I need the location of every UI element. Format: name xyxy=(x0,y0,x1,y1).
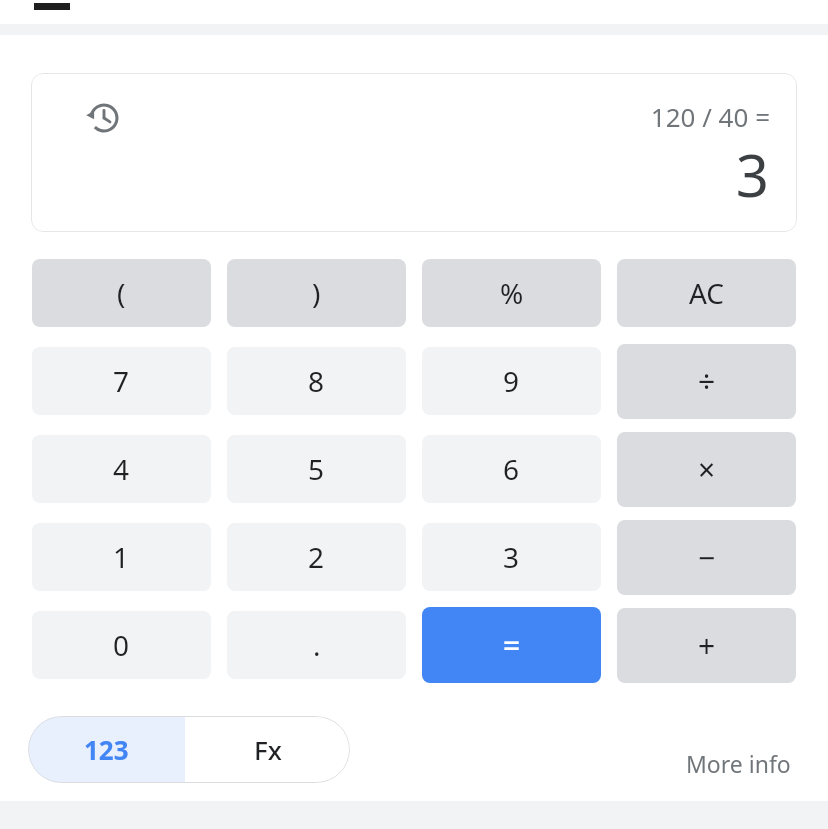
button[interactable]: % xyxy=(422,259,601,327)
button[interactable]: AC xyxy=(617,259,796,327)
staticText: 9 xyxy=(503,362,520,400)
staticText: 123 xyxy=(84,732,129,767)
staticText: Fx xyxy=(254,732,282,767)
button[interactable]: 4 xyxy=(32,435,211,503)
button[interactable]: 2 xyxy=(227,523,406,591)
staticText: 120 / 40 = xyxy=(650,99,770,134)
staticText: More info xyxy=(686,748,791,779)
staticText: ÷ xyxy=(698,361,716,402)
staticText: 7 xyxy=(113,362,130,400)
staticText: 3 xyxy=(503,538,520,576)
staticText: × xyxy=(698,449,716,490)
button[interactable]: ÷ xyxy=(617,344,796,419)
button[interactable]: 123 xyxy=(28,716,185,783)
staticText: 1 xyxy=(113,538,130,576)
button[interactable]: 1 xyxy=(32,523,211,591)
button[interactable]: 3 xyxy=(422,523,601,591)
button[interactable]: 8 xyxy=(227,347,406,415)
staticText: − xyxy=(698,537,716,578)
button[interactable]: More info xyxy=(686,748,791,779)
button[interactable]: × xyxy=(617,432,796,507)
button[interactable]: 5 xyxy=(227,435,406,503)
button[interactable]: + xyxy=(617,608,796,683)
staticText: 5 xyxy=(308,450,325,488)
staticText: . xyxy=(313,626,321,664)
staticText: + xyxy=(698,625,716,666)
staticText: = xyxy=(503,625,521,666)
staticText: ) xyxy=(312,274,321,312)
button[interactable]: 7 xyxy=(32,347,211,415)
staticText: AC xyxy=(689,274,725,312)
button[interactable]: = xyxy=(422,607,601,683)
button[interactable]: − xyxy=(617,520,796,595)
button[interactable]: ) xyxy=(227,259,406,327)
staticText: 8 xyxy=(308,362,325,400)
staticText: 4 xyxy=(113,450,130,488)
staticText: 2 xyxy=(308,538,325,576)
button[interactable]: ( xyxy=(32,259,211,327)
staticText: 6 xyxy=(503,450,520,488)
button[interactable]: 6 xyxy=(422,435,601,503)
button[interactable]: 9 xyxy=(422,347,601,415)
button[interactable]: 0 xyxy=(32,611,211,679)
staticText: 0 xyxy=(113,626,130,664)
staticText: % xyxy=(500,274,524,312)
staticText: ( xyxy=(117,274,126,312)
button[interactable]: . xyxy=(227,611,406,679)
button[interactable]: Fx xyxy=(185,716,350,783)
button[interactable]: History xyxy=(81,95,127,141)
staticText: 3 xyxy=(735,135,769,214)
